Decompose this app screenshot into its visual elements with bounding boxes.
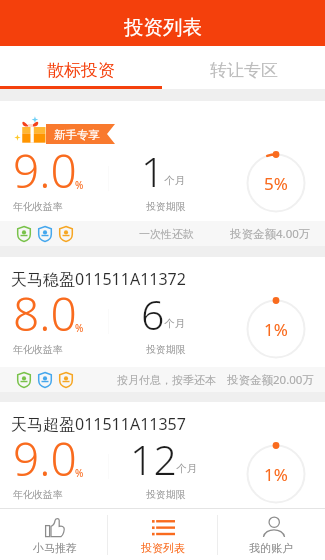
staticText: 个月: [164, 317, 185, 330]
staticText: 年化收益率: [13, 343, 63, 356]
staticText: 投资期限: [146, 200, 186, 213]
staticText: 9.0: [13, 427, 77, 490]
button[interactable]: 散标投资: [0, 46, 162, 89]
button[interactable]: 我的账户: [217, 509, 325, 560]
button[interactable]: 天马超盈011511A11357: [0, 402, 325, 537]
staticText: 6: [141, 286, 165, 342]
staticText: 9.0: [13, 139, 77, 202]
staticText: 投资金额20.00万: [227, 372, 314, 388]
button[interactable]: 转让专区: [162, 46, 325, 89]
staticText: 投资金额20.00万: [227, 517, 314, 533]
staticText: 个月: [176, 462, 197, 475]
button[interactable]: 投资列表: [109, 509, 217, 560]
staticText: 新手专享: [54, 128, 100, 142]
staticText: 1: [141, 143, 165, 199]
staticText: %: [75, 178, 84, 192]
staticText: %: [75, 466, 84, 480]
staticText: 投资期限: [146, 343, 186, 356]
staticText: 我的账户: [249, 541, 293, 555]
staticText: 按月付息，按季还本: [117, 373, 216, 387]
button[interactable]: 新手专享: [0, 101, 325, 246]
staticText: 散标投资: [47, 60, 115, 81]
staticText: 天马超盈011511A11357: [11, 413, 186, 435]
staticText: 一次性还款: [139, 227, 194, 241]
button[interactable]: 天马稳盈011511A11372: [0, 257, 325, 392]
staticText: 投资列表: [141, 541, 185, 555]
staticText: 8.0: [13, 282, 77, 345]
staticText: %: [75, 321, 84, 335]
button[interactable]: 小马推荐: [0, 509, 109, 560]
staticText: 个月: [164, 174, 185, 187]
staticText: 投资金额4.00万: [230, 226, 311, 242]
staticText: 12: [130, 431, 177, 487]
staticText: 天马稳盈011511A11372: [11, 268, 186, 290]
staticText: 小马推荐: [33, 541, 77, 555]
staticText: 5%: [264, 172, 288, 195]
staticText: 年化收益率: [13, 200, 63, 213]
staticText: 投资列表: [124, 15, 202, 40]
staticText: 转让专区: [210, 60, 278, 81]
staticText: 1%: [264, 463, 288, 486]
staticText: 投资期限: [146, 488, 186, 501]
staticText: 年化收益率: [13, 488, 63, 501]
staticText: 1%: [264, 318, 288, 341]
staticText: 按月付息，按季还本: [117, 518, 216, 532]
